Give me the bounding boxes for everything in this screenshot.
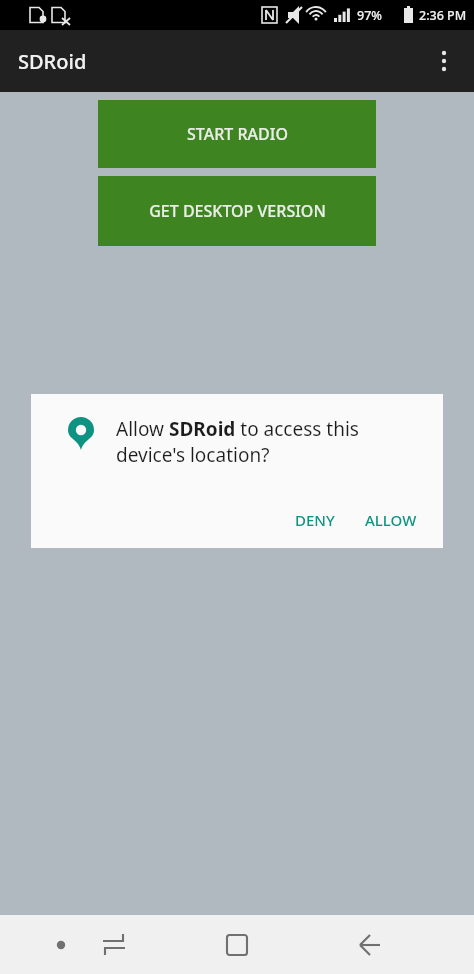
staticText: Allow SDRoid to access this device's loc… xyxy=(116,416,416,468)
button[interactable]: More options xyxy=(420,37,468,85)
staticText: DENY xyxy=(295,510,335,530)
staticText: 2:36 PM xyxy=(419,7,467,24)
staticText: START RADIO xyxy=(187,123,288,145)
staticText: ALLOW xyxy=(365,510,417,530)
button[interactable]: Menu xyxy=(6,915,116,974)
button[interactable]: DENY xyxy=(283,500,347,540)
staticText: 97% xyxy=(357,7,382,24)
button[interactable]: GET DESKTOP VERSION xyxy=(98,176,376,246)
button[interactable]: Recent apps xyxy=(191,915,283,974)
button[interactable]: START RADIO xyxy=(98,100,376,168)
button[interactable]: ALLOW xyxy=(353,500,429,540)
button[interactable]: Back xyxy=(324,915,416,974)
button[interactable]: Switch xyxy=(68,915,160,974)
staticText: GET DESKTOP VERSION xyxy=(149,200,326,222)
staticText: SDRoid xyxy=(18,48,87,75)
